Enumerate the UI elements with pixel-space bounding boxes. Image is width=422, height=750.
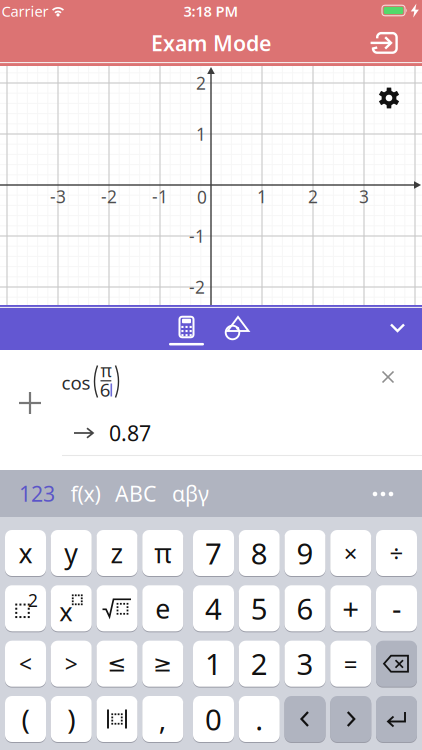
staticText: × — [344, 537, 358, 569]
button[interactable]: Hide keyboard — [383, 312, 412, 342]
staticText: ABC — [115, 479, 156, 508]
button[interactable]: > — [51, 641, 92, 689]
button[interactable]: Square — [5, 585, 46, 633]
staticText: -2 — [101, 185, 117, 208]
staticText: 4 — [205, 589, 222, 628]
staticText: f(x) — [70, 479, 100, 508]
staticText: 0 — [197, 185, 207, 208]
button[interactable]: z — [96, 530, 137, 578]
staticText: -1 — [189, 224, 205, 247]
staticText: cos — [61, 370, 90, 395]
staticText: 9 — [296, 533, 313, 572]
staticText: -1 — [152, 185, 168, 208]
button[interactable]: ≤ — [96, 641, 137, 689]
button[interactable]: Settings — [372, 81, 406, 115]
staticText: 2 — [308, 185, 318, 208]
button[interactable]: 9 — [284, 530, 325, 578]
staticText: 7 — [205, 533, 222, 572]
button[interactable]: 123 — [15, 473, 59, 513]
staticText: 1 — [257, 185, 267, 208]
button[interactable]: Square root — [96, 585, 137, 633]
staticText: 1 — [205, 644, 222, 683]
button[interactable]: Return — [376, 696, 417, 744]
button[interactable]: x — [5, 530, 46, 578]
button[interactable]: + — [330, 585, 371, 633]
staticText: ) — [67, 700, 75, 738]
staticText: 2 — [28, 589, 38, 612]
button[interactable]: More — [370, 485, 396, 503]
button[interactable]: 2 — [239, 641, 280, 689]
staticText: 3 — [359, 185, 369, 208]
button[interactable]: π — [142, 530, 183, 578]
button[interactable]: αβγ — [166, 473, 214, 513]
staticText: x — [18, 535, 32, 571]
button[interactable]: < — [5, 641, 46, 689]
button[interactable]: Geometry — [218, 309, 254, 345]
button[interactable]: × — [330, 530, 371, 578]
staticText: y — [64, 535, 78, 571]
button[interactable]: 6 — [284, 585, 325, 633]
staticText: . — [255, 699, 263, 738]
staticText: > — [65, 649, 78, 679]
button[interactable]: e — [142, 585, 183, 633]
button[interactable]: Backspace — [376, 641, 417, 689]
button[interactable]: ( — [5, 696, 46, 744]
staticText: 0 — [205, 699, 222, 738]
staticText: π — [100, 359, 111, 382]
button[interactable]: Remove expression — [380, 369, 395, 384]
button[interactable]: f(x) — [63, 473, 107, 513]
staticText: 8 — [251, 533, 268, 572]
staticText: 1 — [196, 122, 206, 145]
staticText: e — [155, 591, 170, 626]
staticText: < — [19, 649, 32, 679]
staticText: -3 — [50, 185, 66, 208]
button[interactable]: - — [376, 585, 417, 633]
staticText: 123 — [19, 479, 55, 508]
button[interactable]: ÷ — [376, 530, 417, 578]
button[interactable]: ) — [51, 696, 92, 744]
staticText: αβγ — [172, 479, 209, 508]
button[interactable]: . — [239, 696, 280, 744]
staticText: 2 — [251, 644, 268, 683]
button[interactable]: 3 — [284, 641, 325, 689]
button[interactable]: = — [330, 641, 371, 689]
staticText: -2 — [189, 275, 205, 298]
staticText: - — [392, 589, 401, 628]
staticText: 5 — [251, 589, 268, 628]
button[interactable]: ABC — [111, 473, 159, 513]
staticText: 3 — [296, 644, 313, 683]
staticText: 2 — [196, 71, 206, 94]
button[interactable]: 5 — [239, 585, 280, 633]
staticText: x — [59, 594, 72, 628]
staticText: ( — [21, 700, 29, 738]
button[interactable]: Move right — [330, 696, 371, 744]
button[interactable]: 1 — [193, 641, 234, 689]
staticText: + — [342, 589, 359, 628]
staticText: 6 — [100, 377, 111, 402]
staticText: π — [154, 535, 171, 571]
button[interactable]: , — [142, 696, 183, 744]
button[interactable]: y — [51, 530, 92, 578]
button[interactable]: 7 — [193, 530, 234, 578]
staticText: Carrier — [1, 1, 48, 21]
button[interactable]: Power — [51, 585, 92, 633]
staticText: z — [110, 535, 123, 571]
button[interactable]: Calculator — [169, 309, 204, 344]
staticText: ÷ — [389, 537, 403, 569]
staticText: , — [159, 700, 167, 738]
button[interactable]: Exit Exam Mode — [367, 25, 407, 61]
staticText: 0.87 — [109, 419, 151, 447]
button[interactable]: 8 — [239, 530, 280, 578]
button[interactable]: New expression — [17, 391, 43, 415]
staticText: Exam Mode — [151, 29, 271, 57]
staticText: ≤ — [107, 651, 126, 676]
staticText: 3:18 PM — [183, 1, 238, 21]
button[interactable]: 0 — [193, 696, 234, 744]
staticText: ≥ — [153, 651, 172, 676]
button[interactable]: 4 — [193, 585, 234, 633]
button[interactable]: Absolute value — [96, 696, 137, 744]
staticText: 6 — [296, 589, 313, 628]
button[interactable]: Move left — [284, 696, 325, 744]
staticText: = — [344, 648, 358, 680]
button[interactable]: ≥ — [142, 641, 183, 689]
